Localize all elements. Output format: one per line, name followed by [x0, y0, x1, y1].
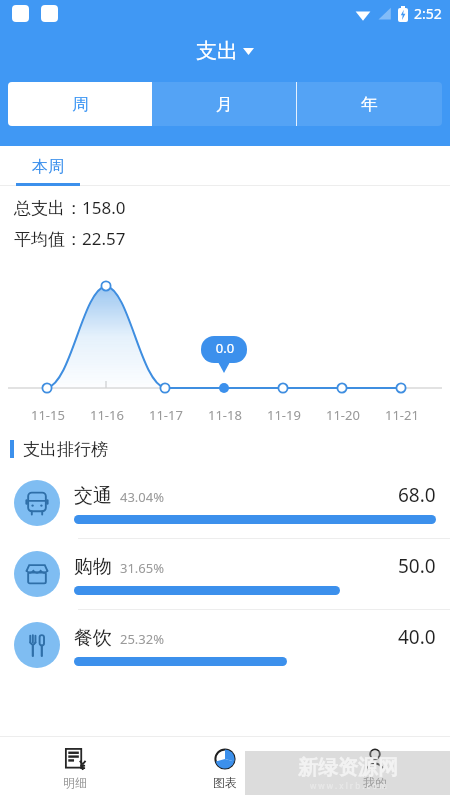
staticText: 11-18 [208, 406, 242, 424]
button[interactable]: 月 [152, 82, 297, 126]
staticText: 购物 [74, 555, 112, 579]
button[interactable]: 购物 [0, 539, 450, 609]
button[interactable]: 交通 [0, 468, 450, 538]
staticText: 11-20 [326, 406, 360, 424]
staticText: 总支出：158.0 [14, 196, 126, 219]
staticText: 40.0 [398, 624, 436, 650]
staticText: 月 [216, 94, 233, 115]
button[interactable]: 本周 [16, 157, 80, 186]
button[interactable]: 我的 [300, 737, 450, 800]
button[interactable]: 年 [297, 82, 442, 126]
staticText: 0.0 [205, 339, 245, 357]
staticText: 周 [72, 94, 89, 115]
button[interactable]: 周 [8, 82, 152, 126]
staticText: 餐饮 [74, 626, 112, 650]
button[interactable]: 餐饮 [0, 610, 450, 680]
staticText: 我的 [363, 775, 387, 790]
button[interactable]: 支出 [190, 34, 260, 68]
staticText: 11-17 [149, 406, 183, 424]
staticText: 2:52 [414, 4, 442, 23]
staticText: 11-21 [385, 406, 419, 424]
staticText: 年 [361, 94, 378, 115]
staticText: 25.32% [120, 630, 165, 648]
staticText: 交通 [74, 484, 112, 508]
staticText: 图表 [213, 775, 237, 790]
staticText: 平均值：22.57 [14, 227, 126, 250]
staticText: w w w . x l r b . c o m [310, 780, 387, 791]
staticText: 43.04% [120, 488, 165, 506]
staticText: 新绿资源网 [298, 755, 398, 780]
staticText: 支出 [196, 38, 238, 64]
staticText: 31.65% [120, 559, 165, 577]
staticText: 本周 [32, 157, 64, 177]
button[interactable]: 明细 [0, 737, 150, 800]
staticText: 68.0 [398, 482, 436, 508]
staticText: 11-15 [31, 406, 65, 424]
staticText: 明细 [63, 775, 87, 790]
staticText: 50.0 [398, 553, 436, 579]
button[interactable]: 图表 [150, 737, 300, 800]
staticText: 11-16 [90, 406, 124, 424]
staticText: 11-19 [267, 406, 301, 424]
staticText: 支出排行榜 [23, 439, 108, 460]
